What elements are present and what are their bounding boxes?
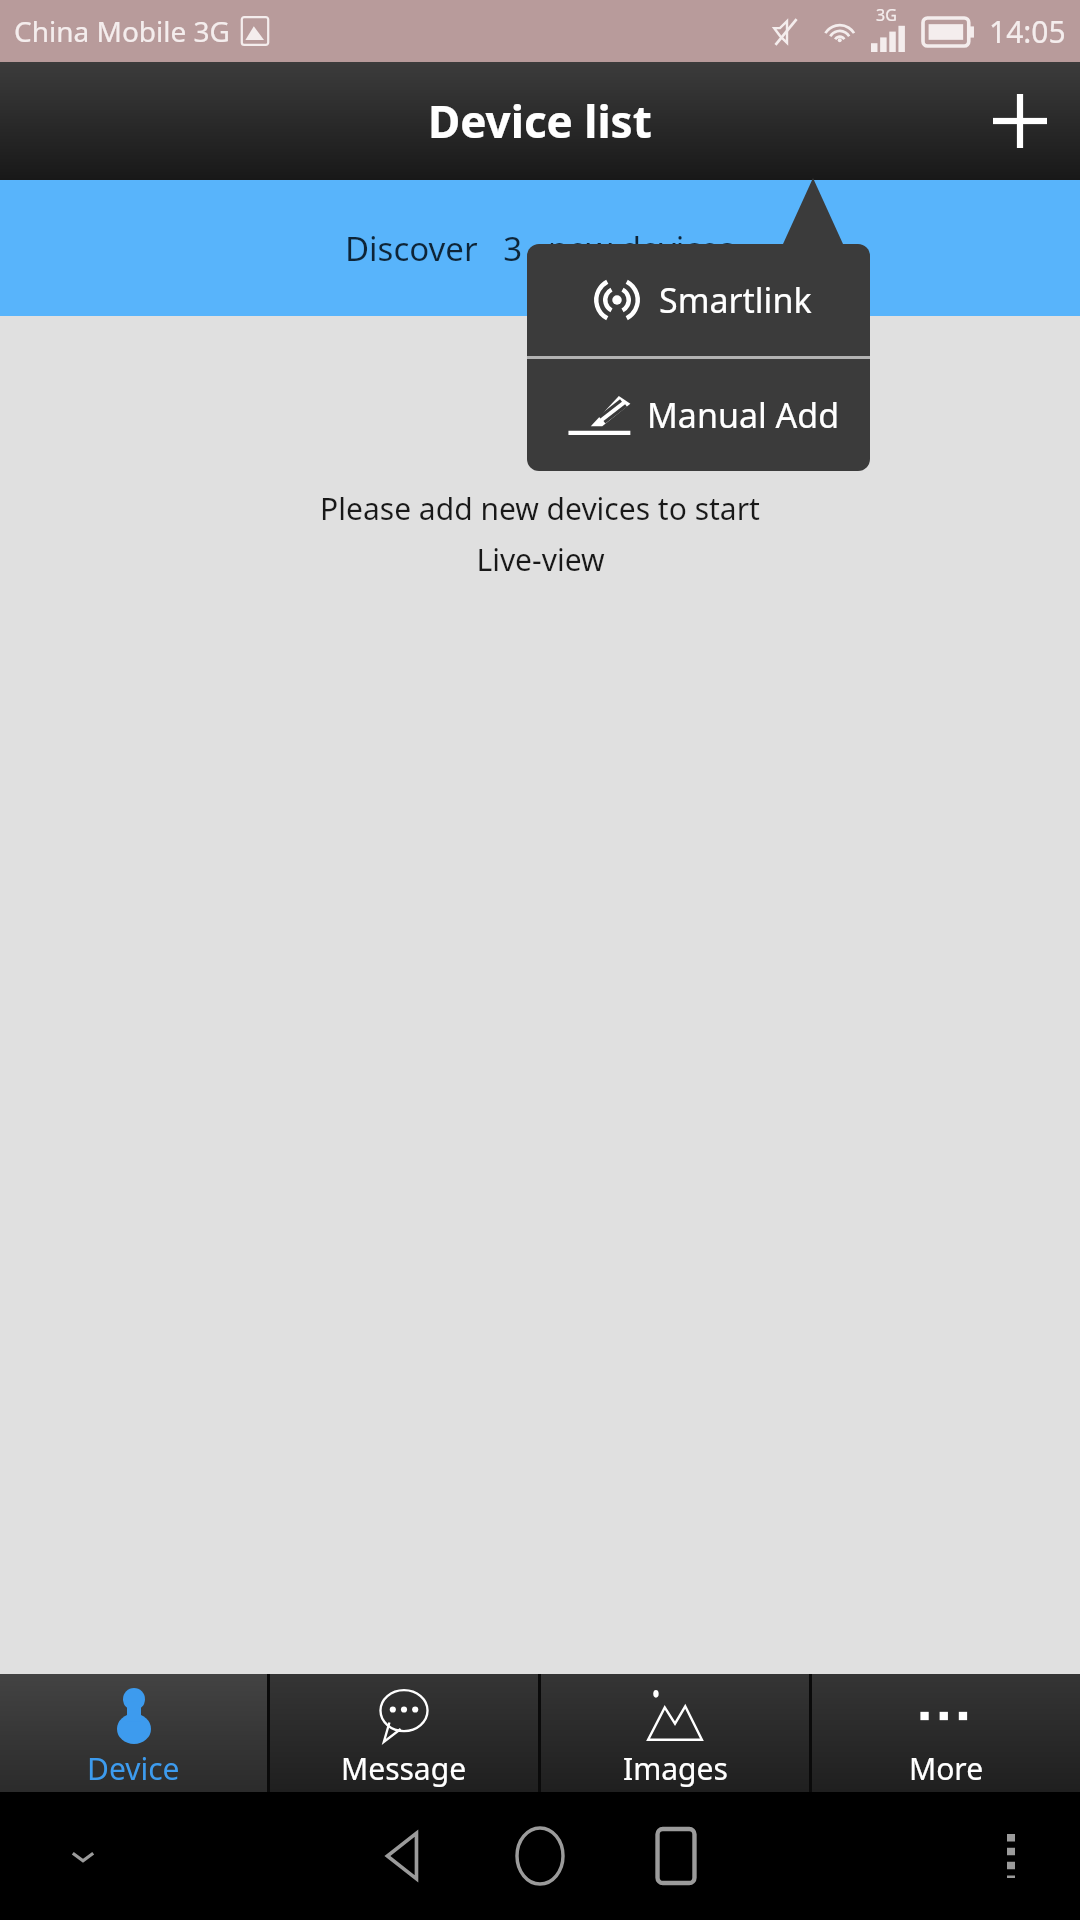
staticText: 3G: [876, 4, 897, 26]
button[interactable]: Hide navigation bar: [48, 1821, 118, 1891]
button[interactable]: Home: [492, 1808, 588, 1904]
staticText: 14:05: [989, 11, 1066, 52]
button[interactable]: Smartlink: [527, 244, 870, 356]
button[interactable]: Recents: [628, 1808, 724, 1904]
staticText: Please add new devices to start: [320, 488, 760, 529]
button[interactable]: Images: [541, 1674, 809, 1792]
button[interactable]: Add device: [980, 81, 1060, 161]
button[interactable]: Device: [0, 1674, 267, 1792]
staticText: Manual Add: [647, 392, 840, 438]
staticText: Images: [623, 1748, 728, 1789]
staticText: Device: [87, 1748, 180, 1789]
button[interactable]: Discover 3 new devices: [0, 180, 1080, 316]
staticText: Device list: [428, 91, 652, 151]
staticText: Smartlink: [659, 277, 812, 323]
staticText: More: [909, 1748, 984, 1789]
staticText: China Mobile 3G: [14, 12, 230, 50]
button[interactable]: Manual Add: [527, 359, 870, 471]
staticText: Message: [341, 1748, 467, 1789]
button[interactable]: Message: [270, 1674, 538, 1792]
staticText: Discover 3 new devices: [345, 226, 735, 271]
button[interactable]: More: [812, 1674, 1080, 1792]
staticText: Live-view: [476, 539, 605, 580]
button[interactable]: Menu: [976, 1821, 1046, 1891]
button[interactable]: Back: [356, 1808, 452, 1904]
